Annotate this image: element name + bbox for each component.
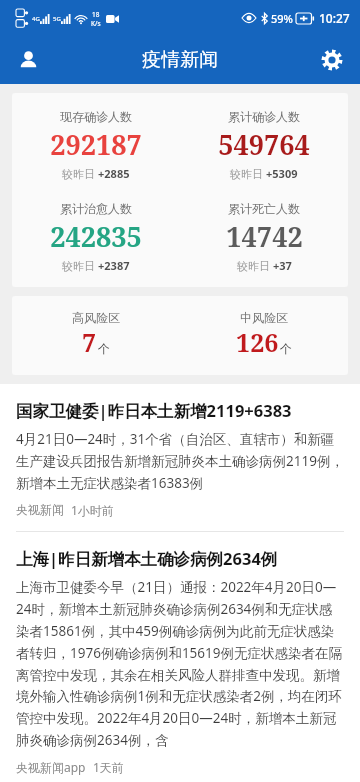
staticText: 高风险区: [72, 310, 120, 325]
button[interactable]: 上海|昨日新增本土确诊病例2634例: [0, 532, 360, 782]
button[interactable]: Profile: [6, 38, 50, 82]
staticText: 现存确诊人数: [60, 109, 132, 124]
staticText: 上海|昨日新增本土确诊病例2634例: [16, 547, 278, 570]
staticText: 中风险区: [240, 310, 288, 325]
button[interactable]: Settings: [310, 38, 354, 82]
staticText: 549764: [218, 126, 310, 163]
staticText: 较昨日: [237, 258, 273, 273]
staticText: 126: [236, 325, 279, 359]
staticText: 10:27: [319, 10, 350, 26]
staticText: 59%: [271, 11, 293, 26]
button[interactable]: 国家卫健委|昨日本土新增2119+6383: [0, 384, 360, 532]
staticText: 较昨日: [62, 166, 98, 181]
staticText: 14742: [226, 218, 303, 255]
staticText: 较昨日: [230, 166, 266, 181]
staticText: +2885: [98, 166, 130, 181]
button[interactable]: 高风险区: [12, 296, 348, 375]
staticText: 1小时前: [71, 502, 114, 518]
staticText: 292187: [50, 126, 142, 163]
staticText: 1天前: [93, 759, 124, 775]
staticText: K/s: [91, 19, 101, 28]
staticText: 7: [82, 325, 97, 359]
staticText: 242835: [50, 218, 142, 255]
staticText: +2387: [98, 258, 130, 273]
staticText: 5G: [53, 15, 61, 23]
staticText: 个: [98, 341, 110, 356]
staticText: +37: [273, 258, 292, 273]
staticText: 累计治愈人数: [60, 201, 132, 216]
staticText: 累计死亡人数: [228, 201, 300, 216]
staticText: 上海市卫健委今早（21日）通报：2022年4月20日0—24时，新增本土新冠肺炎…: [16, 578, 344, 749]
staticText: 个: [280, 341, 292, 356]
button[interactable]: 现存确诊人数: [12, 93, 348, 287]
staticText: 疫情新闻: [142, 48, 218, 72]
staticText: 18: [92, 10, 100, 19]
staticText: 央视新闻: [16, 502, 64, 517]
staticText: 较昨日: [62, 258, 98, 273]
staticText: 4月21日0—24时，31个省（自治区、直辖市）和新疆生产建设兵团报告新增新冠肺…: [16, 430, 344, 492]
staticText: 4G: [32, 15, 40, 23]
staticText: 国家卫健委|昨日本土新增2119+6383: [16, 399, 292, 422]
staticText: 央视新闻app: [16, 759, 86, 775]
staticText: +5309: [266, 166, 298, 181]
staticText: 累计确诊人数: [228, 109, 300, 124]
